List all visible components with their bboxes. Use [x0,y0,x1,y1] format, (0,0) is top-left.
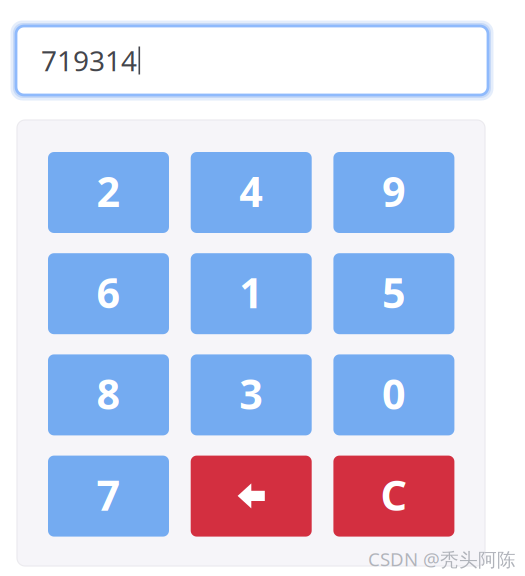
staticText: 8 [96,366,120,421]
staticText: CSDN @秃头阿陈 [368,547,516,571]
staticText: 0 [382,366,406,421]
staticText: 6 [96,265,120,320]
button[interactable]: 1 [191,253,312,334]
staticText: 3 [239,366,263,421]
staticText: 9 [382,164,406,218]
button[interactable]: Number input [10,20,494,101]
button[interactable]: 3 [191,354,312,435]
button[interactable]: Clear [333,456,454,537]
button[interactable]: 6 [48,253,169,334]
button[interactable]: 9 [333,152,454,233]
button[interactable]: 8 [48,354,169,435]
button[interactable]: 4 [191,152,312,233]
staticText: 1 [239,265,263,320]
staticText: C [380,467,407,522]
staticText: 5 [382,265,406,320]
staticText: 7 [96,467,120,522]
button[interactable]: 5 [333,253,454,334]
staticText: 2 [96,164,120,218]
staticText: 4 [239,164,263,218]
button[interactable]: Backspace [191,456,312,537]
button[interactable]: 2 [48,152,169,233]
button[interactable]: 0 [333,354,454,435]
staticText: 719314 [41,42,137,79]
button[interactable]: 7 [48,456,169,537]
